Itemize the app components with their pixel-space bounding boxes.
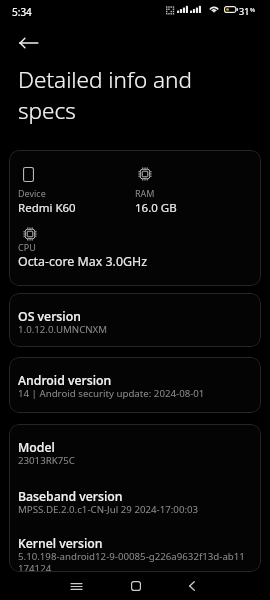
staticText: 31 bbox=[239, 5, 250, 17]
staticText: Model bbox=[18, 439, 55, 456]
staticText: RAM bbox=[135, 187, 155, 199]
button[interactable]: Back bbox=[172, 572, 212, 600]
button[interactable]: Model bbox=[9, 424, 261, 572]
button[interactable]: Recent apps bbox=[56, 572, 96, 600]
staticText: Redmi K60 bbox=[18, 200, 76, 216]
staticText: 5.10.198-android12-9-00085-g226a9632f13d… bbox=[18, 550, 245, 572]
staticText: Octa-core Max 3.0GHz bbox=[18, 253, 148, 270]
button[interactable]: Android version bbox=[9, 357, 261, 413]
staticText: Baseband version bbox=[18, 488, 123, 505]
button[interactable]: Back bbox=[13, 28, 43, 58]
staticText: Device bbox=[18, 187, 46, 199]
staticText: MPSS.DE.2.0.c1-CN-Jul 29 2024-17:00:03 bbox=[18, 503, 199, 516]
button[interactable]: OS version bbox=[9, 293, 261, 347]
button[interactable]: Home bbox=[116, 572, 156, 600]
staticText: 5:34 bbox=[12, 5, 32, 19]
button[interactable]: Device bbox=[9, 150, 261, 286]
staticText: 1.0.12.0.UMNCNXM bbox=[18, 323, 108, 336]
staticText: 14 | Android security update: 2024-08-01 bbox=[18, 387, 205, 400]
staticText: % bbox=[250, 6, 255, 14]
staticText: OS version bbox=[18, 308, 81, 325]
staticText: 16.0 GB bbox=[135, 200, 177, 216]
staticText: Detailed info and specs bbox=[18, 64, 203, 125]
staticText: Android version bbox=[18, 372, 112, 389]
staticText: 23013RK75C bbox=[18, 454, 75, 467]
staticText: CPU bbox=[18, 241, 36, 253]
staticText: Kernel version bbox=[18, 535, 103, 552]
